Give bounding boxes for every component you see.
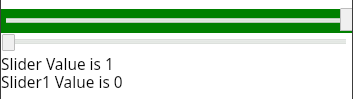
staticText: Slider1 Value is 0: [1, 72, 123, 93]
button[interactable]: Slider: [1, 8, 353, 33]
staticText: Slider Value is 1: [1, 54, 114, 75]
button[interactable]: Slider1: [1, 34, 353, 52]
